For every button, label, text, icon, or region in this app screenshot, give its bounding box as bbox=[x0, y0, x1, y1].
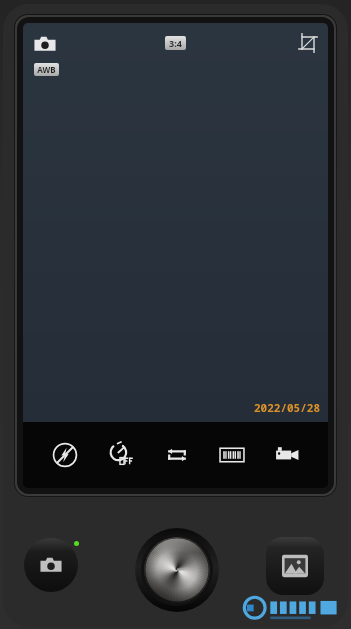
button[interactable]: Camera mode bbox=[33, 32, 57, 56]
button[interactable]: Gallery bbox=[266, 537, 324, 595]
button[interactable]: Self timer off bbox=[93, 433, 149, 477]
button[interactable]: 3:4 bbox=[169, 37, 182, 49]
button[interactable]: Framing grid bbox=[298, 33, 318, 53]
button[interactable]: Switch camera bbox=[149, 433, 204, 477]
button[interactable]: AWB bbox=[37, 64, 56, 75]
button[interactable]: Video mode bbox=[259, 433, 314, 477]
staticText: AWB bbox=[37, 64, 56, 75]
button[interactable]: Still camera mode bbox=[24, 538, 78, 592]
staticText: 2022/05/28 bbox=[254, 400, 320, 415]
button[interactable]: Menu bbox=[204, 433, 259, 477]
staticText: 3:4 bbox=[169, 37, 182, 49]
button[interactable]: Shutter bbox=[144, 537, 210, 603]
button[interactable]: Flash off bbox=[37, 433, 93, 477]
